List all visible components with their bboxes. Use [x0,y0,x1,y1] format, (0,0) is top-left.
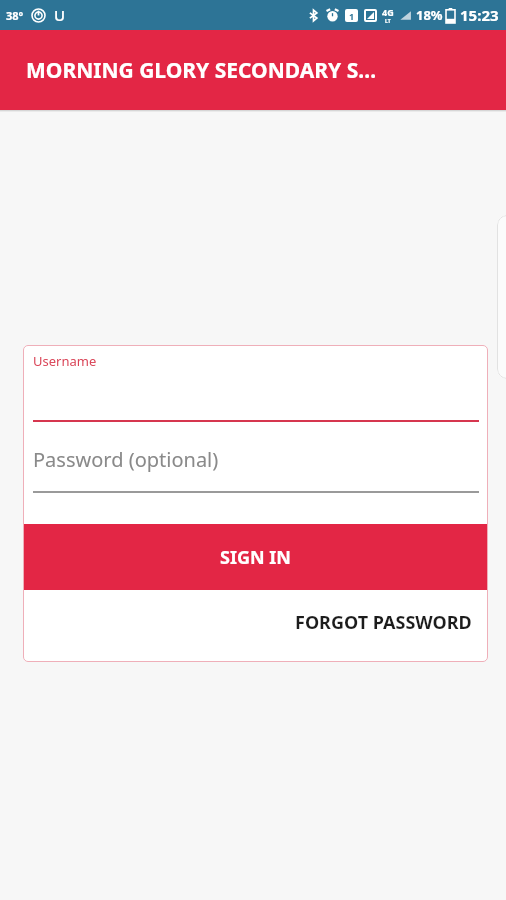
staticText: U [54,5,66,25]
button[interactable]: Username [23,345,488,422]
button[interactable]: SIGN IN [23,524,488,590]
staticText: Username [33,352,97,370]
staticText: SIGN IN [220,545,291,570]
staticText: 1 [349,10,355,22]
staticText: 15:23 [460,5,499,25]
staticText: Password (optional) [33,446,219,473]
staticText: 4G [382,6,394,18]
button[interactable]: Password (optional) [23,441,488,493]
button[interactable]: FORGOT PASSWORD [23,590,488,654]
staticText: 38° [6,8,24,23]
staticText: LT [385,18,391,25]
staticText: MORNING GLORY SECONDARY S… [26,56,377,85]
staticText: 18% [416,6,443,24]
staticText: FORGOT PASSWORD [295,610,472,635]
